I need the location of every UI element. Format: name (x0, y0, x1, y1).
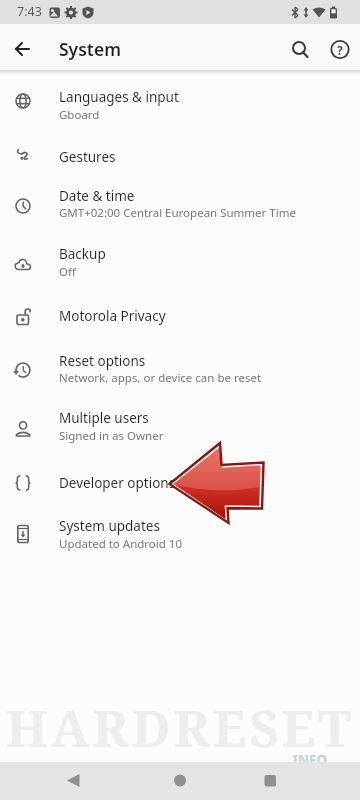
staticText: GMT+02:00 Central European Summer Time (59, 205, 296, 221)
button[interactable] (60, 762, 90, 800)
button[interactable] (0, 238, 360, 290)
button[interactable] (0, 290, 360, 342)
staticText: Backup (59, 245, 106, 263)
button[interactable] (0, 509, 360, 562)
button[interactable] (0, 131, 360, 183)
button[interactable] (165, 762, 195, 800)
button[interactable] (324, 33, 356, 65)
button[interactable] (0, 78, 360, 131)
staticText: Motorola Privacy (59, 307, 166, 325)
staticText: .INFO (289, 751, 328, 769)
staticText: Reset options (59, 352, 146, 370)
staticText: Multiple users (59, 409, 149, 427)
button[interactable] (0, 342, 360, 396)
staticText: Gestures (59, 148, 116, 166)
button[interactable] (0, 457, 360, 509)
staticText: Gboard (59, 107, 100, 123)
staticText: Signed in as Owner (59, 428, 164, 444)
staticText: Date & time (59, 187, 135, 205)
staticText: Off (59, 264, 76, 280)
button[interactable] (0, 398, 360, 457)
staticText: HARDRESET (6, 692, 355, 754)
button[interactable] (283, 33, 315, 65)
button[interactable] (6, 33, 38, 65)
staticText: Network, apps, or device can be reset (59, 370, 262, 386)
staticText: System updates (59, 517, 160, 535)
button[interactable] (0, 183, 360, 238)
staticText: Updated to Android 10 (59, 536, 182, 552)
button[interactable] (255, 762, 285, 800)
staticText: System (59, 37, 121, 61)
staticText: 7:43 (17, 3, 42, 20)
staticText: ? (337, 42, 343, 58)
staticText: Developer options (59, 474, 176, 492)
staticText: Languages & input (59, 88, 179, 106)
